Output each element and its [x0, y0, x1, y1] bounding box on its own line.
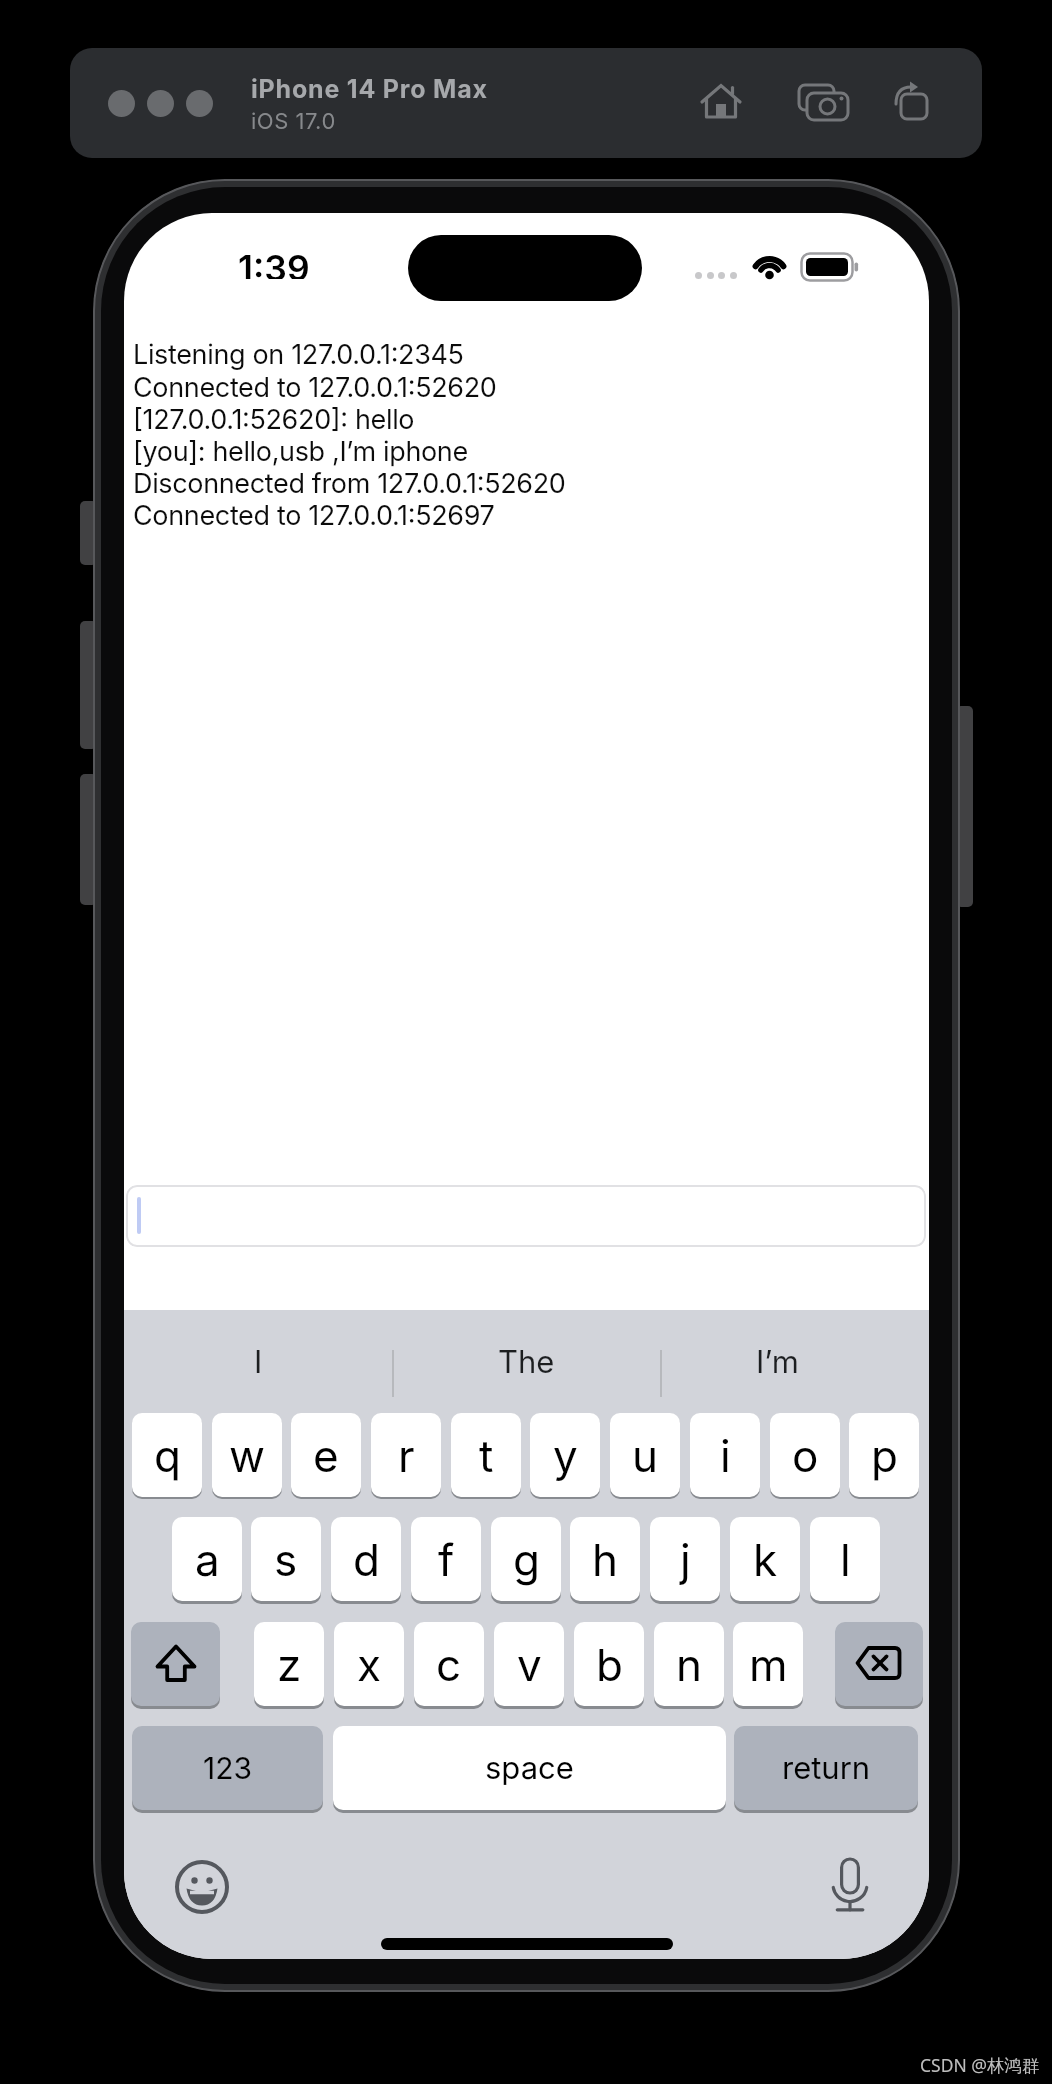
button[interactable]: The [392, 1310, 660, 1413]
staticText: I [254, 1343, 263, 1381]
staticText: q [154, 1429, 181, 1482]
staticText: z [277, 1638, 302, 1691]
button[interactable]: h [570, 1517, 640, 1601]
staticText: m [749, 1638, 788, 1691]
button[interactable]: q [132, 1413, 202, 1497]
button[interactable]: s [251, 1517, 321, 1601]
button[interactable] [147, 90, 174, 117]
staticText: s [274, 1533, 298, 1586]
button[interactable]: p [849, 1413, 919, 1497]
button[interactable]: e [291, 1413, 361, 1497]
staticText: r [398, 1429, 415, 1482]
staticText: v [517, 1638, 542, 1691]
staticText: n [676, 1638, 702, 1691]
staticText: t [479, 1429, 494, 1482]
button[interactable]: 123 [132, 1726, 323, 1810]
button[interactable]: space [333, 1726, 726, 1810]
staticText: f [438, 1533, 455, 1586]
button[interactable]: w [212, 1413, 282, 1497]
staticText: i [720, 1429, 731, 1482]
staticText: a [195, 1533, 220, 1586]
button[interactable]: v [494, 1622, 564, 1706]
staticText: h [592, 1533, 619, 1586]
staticText: iPhone 14 Pro Max [251, 74, 488, 104]
staticText: space [485, 1749, 574, 1787]
button[interactable]: k [730, 1517, 800, 1601]
staticText: 1:39 [238, 247, 310, 279]
staticText: x [357, 1638, 382, 1691]
button[interactable]: g [491, 1517, 561, 1601]
staticText: b [596, 1638, 623, 1691]
staticText: k [753, 1533, 778, 1586]
button[interactable] [186, 90, 213, 117]
button[interactable] [126, 1185, 926, 1247]
button[interactable]: c [414, 1622, 484, 1706]
button[interactable]: I’m [661, 1310, 929, 1413]
button[interactable]: n [654, 1622, 724, 1706]
button[interactable]: x [334, 1622, 404, 1706]
staticText: w [229, 1429, 266, 1482]
button[interactable]: f [411, 1517, 481, 1601]
button[interactable] [108, 90, 135, 117]
button[interactable] [699, 82, 743, 122]
button[interactable]: I [124, 1310, 392, 1413]
staticText: iOS 17.0 [251, 108, 336, 135]
staticText: g [513, 1533, 540, 1586]
staticText: Listening on 127.0.0.1:2345 Connected to… [133, 338, 566, 531]
staticText: p [871, 1429, 898, 1482]
button[interactable] [890, 80, 934, 122]
button[interactable]: l [810, 1517, 880, 1601]
button[interactable] [131, 1622, 220, 1706]
staticText: return [782, 1749, 871, 1787]
button[interactable]: t [451, 1413, 521, 1497]
staticText: c [436, 1638, 462, 1691]
button[interactable]: y [530, 1413, 600, 1497]
staticText: y [553, 1429, 578, 1482]
button[interactable]: m [733, 1622, 803, 1706]
button[interactable]: o [770, 1413, 840, 1497]
staticText: I’m [756, 1343, 799, 1381]
button[interactable]: a [172, 1517, 242, 1601]
button[interactable]: z [254, 1622, 324, 1706]
staticText: e [313, 1429, 339, 1482]
staticText: d [353, 1533, 380, 1586]
staticText: 123 [203, 1750, 253, 1786]
button[interactable]: r [371, 1413, 441, 1497]
button[interactable]: u [610, 1413, 680, 1497]
button[interactable] [835, 1622, 923, 1706]
button[interactable]: d [331, 1517, 401, 1601]
staticText: j [680, 1533, 691, 1586]
staticText: o [792, 1429, 819, 1482]
staticText: l [840, 1533, 851, 1586]
button[interactable]: j [650, 1517, 720, 1601]
button[interactable]: i [690, 1413, 760, 1497]
staticText: The [498, 1343, 555, 1381]
button[interactable] [174, 1859, 230, 1915]
staticText: CSDN @林鸿群 [920, 2053, 1040, 2077]
button[interactable]: b [574, 1622, 644, 1706]
button[interactable]: return [734, 1726, 918, 1810]
button[interactable] [822, 1859, 878, 1921]
staticText: u [632, 1429, 659, 1482]
button[interactable] [796, 81, 852, 123]
